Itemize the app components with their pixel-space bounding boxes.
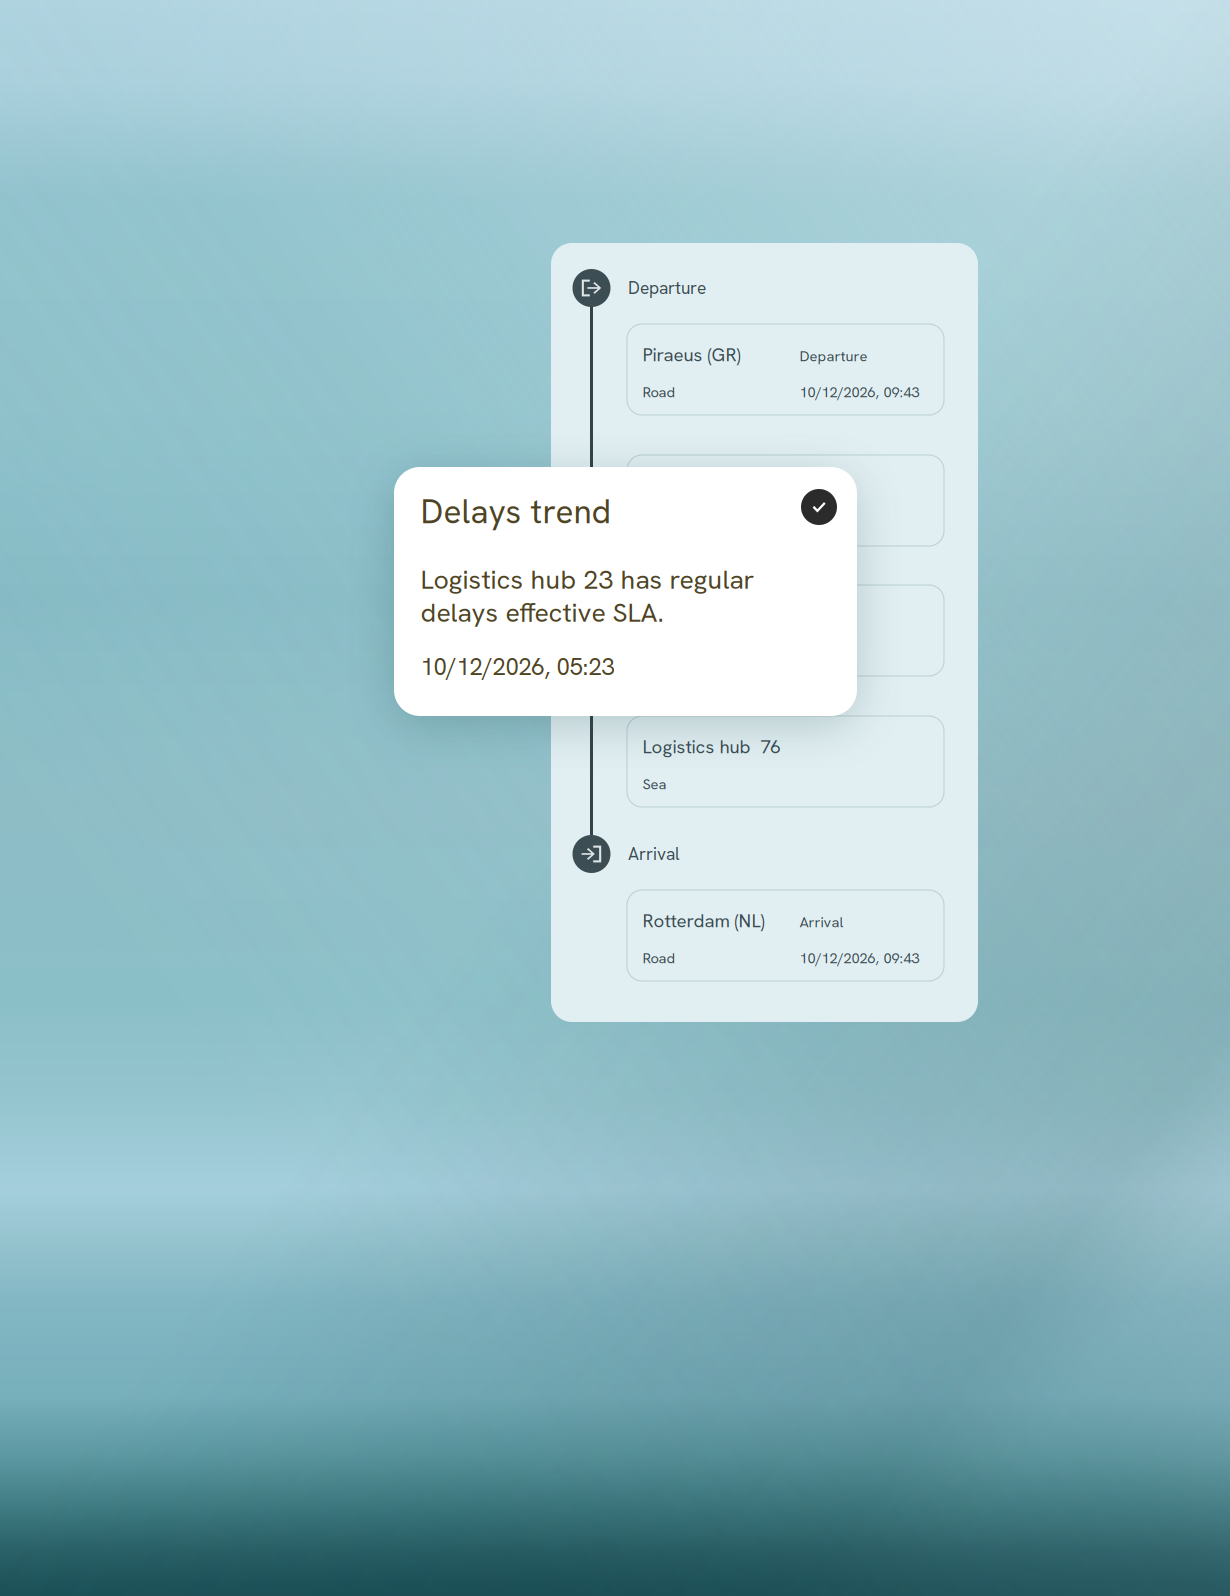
button[interactable]: Logistics hub 58: [627, 585, 944, 676]
staticText: 10/12/2026, 09:43: [799, 382, 919, 402]
staticText: Logistics hub 58: [642, 603, 780, 628]
staticText: delays effective SLA.: [420, 595, 663, 630]
staticText: Arrival: [799, 912, 843, 932]
staticText: Departure: [628, 277, 706, 299]
button[interactable]: Piraeus (GR): [627, 324, 944, 415]
staticText: Logistics hub 23 has regular: [420, 562, 754, 597]
staticText: Arrival: [628, 843, 680, 865]
staticText: Departure: [799, 346, 867, 366]
button[interactable]: Rotterdam (NL): [627, 890, 944, 981]
staticText: Logistics hub 76: [642, 734, 780, 759]
staticText: 10/12/2026, 05:23: [420, 651, 614, 682]
staticText: Delays trend: [421, 490, 612, 533]
button[interactable]: Logistics hub 41: [627, 455, 944, 546]
button[interactable]: Logistics hub 76: [627, 716, 944, 807]
button[interactable]: Dismiss: [801, 489, 837, 525]
staticText: Rotterdam (NL): [642, 908, 764, 933]
staticText: Piraeus (GR): [642, 342, 740, 367]
staticText: Road: [642, 382, 675, 402]
staticText: Road: [642, 948, 675, 968]
staticText: Sea: [642, 774, 666, 794]
staticText: 10/12/2026, 09:43: [799, 948, 919, 968]
